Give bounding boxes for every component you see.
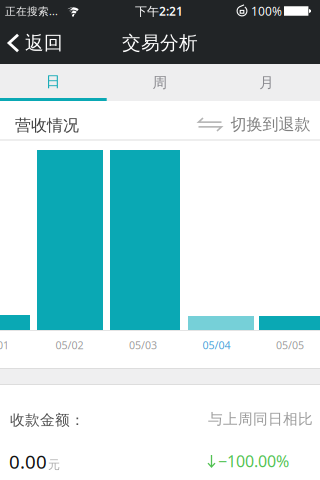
- button[interactable]: 月: [213, 64, 320, 101]
- button[interactable]: 日: [0, 64, 107, 101]
- staticText: 收款金额：: [10, 411, 85, 429]
- button[interactable]: 返回: [9, 31, 63, 54]
- staticText: 营收情况: [15, 116, 79, 135]
- staticText: 05/01: [0, 338, 9, 352]
- staticText: 交易分析: [122, 31, 198, 54]
- staticText: 100%: [251, 3, 282, 19]
- staticText: 05/05: [276, 338, 304, 352]
- staticText: 元: [48, 457, 60, 472]
- staticText: 05/03: [129, 338, 157, 352]
- button[interactable]: 切换到退款: [198, 115, 310, 134]
- staticText: 周: [152, 73, 167, 91]
- staticText: 日: [46, 72, 61, 90]
- staticText: 下午2:21: [135, 3, 183, 19]
- staticText: 与上周同日相比: [208, 410, 313, 428]
- staticText: 0.00: [9, 449, 47, 474]
- button[interactable]: 周: [107, 64, 213, 101]
- staticText: 正在搜索...: [5, 4, 58, 18]
- staticText: 月: [259, 73, 274, 91]
- staticText: 05/02: [55, 338, 83, 352]
- staticText: 05/04: [202, 338, 230, 352]
- staticText: 切换到退款: [230, 115, 310, 134]
- staticText: −100.00%: [218, 450, 289, 472]
- staticText: 返回: [25, 31, 63, 54]
